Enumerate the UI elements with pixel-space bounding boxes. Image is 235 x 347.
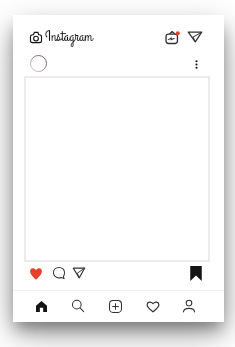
button[interactable]: Camera — [25, 27, 47, 48]
button[interactable]: Activity — [141, 295, 165, 318]
staticText: Instagram — [45, 27, 93, 47]
button[interactable]: More options — [188, 53, 205, 76]
button[interactable]: Profile — [177, 294, 201, 318]
button[interactable]: Home — [30, 295, 53, 318]
button[interactable]: Comment — [48, 262, 70, 284]
button[interactable]: Share — [68, 262, 90, 283]
button[interactable]: New post — [104, 295, 127, 318]
button[interactable]: IGTV — [161, 27, 184, 48]
button[interactable]: Save — [185, 261, 207, 286]
button[interactable]: Search — [66, 294, 90, 318]
button[interactable]: Direct messages — [183, 26, 207, 47]
button[interactable]: Like — [25, 262, 47, 285]
button[interactable]: Your story — [26, 51, 51, 76]
